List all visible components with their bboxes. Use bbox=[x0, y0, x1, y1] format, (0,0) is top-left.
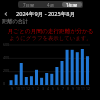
staticText: 7日間 bbox=[23, 2, 35, 7]
staticText: 11 bbox=[81, 86, 85, 91]
staticText: 7 bbox=[62, 86, 64, 91]
staticText: 12 bbox=[26, 86, 30, 91]
button[interactable]: 7日間 bbox=[19, 2, 38, 7]
staticText: 1年間 bbox=[66, 2, 78, 7]
staticText: 4週 bbox=[47, 2, 54, 7]
staticText: 2024年9月 - 2025年8月 bbox=[16, 10, 76, 18]
staticText: 月ごとの月間の走行距離が分かる bbox=[7, 28, 94, 35]
staticText: 9 bbox=[11, 86, 13, 91]
staticText: ようにグラフを表示しています。 bbox=[9, 35, 92, 42]
staticText: 400 bbox=[3, 55, 10, 60]
button[interactable]: 4週 bbox=[40, 2, 60, 7]
staticText: 200 bbox=[3, 68, 10, 73]
staticText: 10 bbox=[16, 86, 20, 91]
staticText: 5 bbox=[52, 86, 54, 91]
staticText: 2 bbox=[37, 86, 39, 91]
staticText: 0 bbox=[3, 81, 6, 86]
staticText: 4 bbox=[47, 86, 49, 91]
staticText: 600 bbox=[3, 42, 10, 47]
staticText: 6 bbox=[57, 86, 59, 91]
staticText: 9 bbox=[72, 86, 74, 91]
button[interactable]: Previous period bbox=[2, 10, 10, 18]
button[interactable]: 1年間 bbox=[62, 2, 82, 7]
staticText: 12 bbox=[86, 86, 90, 91]
staticText: 距離の合計 bbox=[2, 18, 29, 25]
staticText: 8 bbox=[67, 86, 69, 91]
staticText: 3 bbox=[42, 86, 44, 91]
staticText: 10 bbox=[76, 86, 80, 91]
staticText: 11 bbox=[21, 86, 25, 91]
staticText: 1 bbox=[32, 86, 34, 91]
